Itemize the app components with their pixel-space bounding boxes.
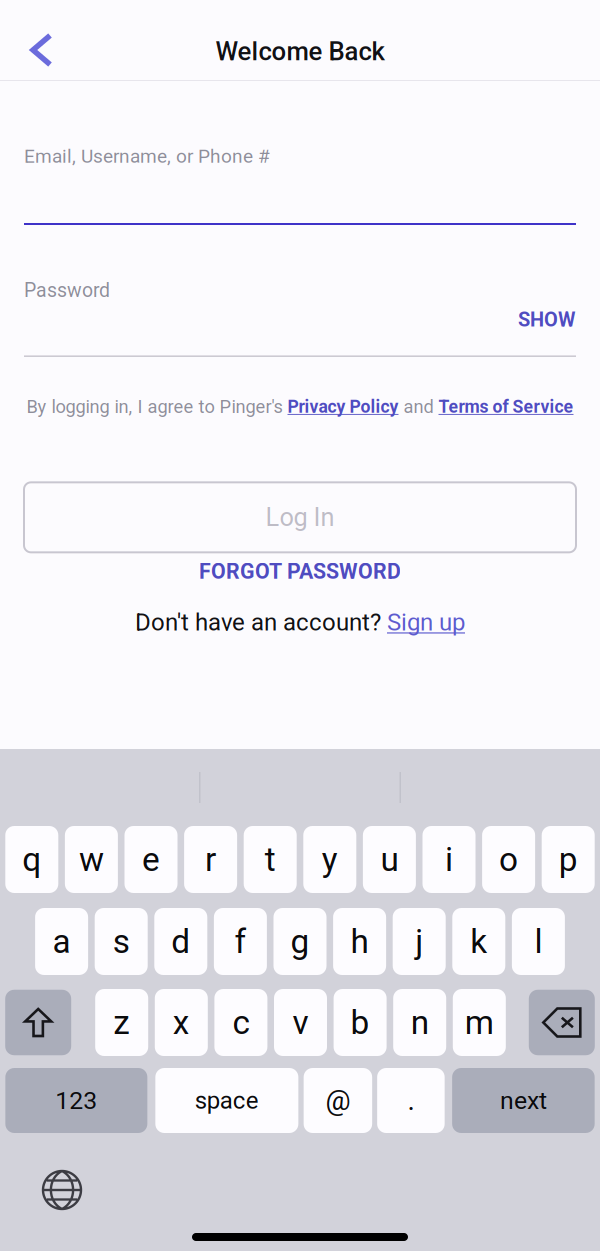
staticText: c bbox=[232, 1003, 249, 1042]
button[interactable]: next bbox=[452, 1068, 595, 1133]
staticText: m bbox=[465, 1003, 494, 1042]
button[interactable]: f bbox=[214, 908, 267, 975]
button[interactable]: l bbox=[512, 908, 565, 975]
staticText: w bbox=[79, 840, 104, 879]
staticText: y bbox=[322, 840, 338, 879]
button[interactable]: Privacy Policy bbox=[287, 396, 398, 417]
staticText: l bbox=[534, 922, 542, 961]
button[interactable]: v bbox=[274, 989, 327, 1056]
button[interactable]: Terms of Service bbox=[438, 396, 573, 417]
staticText: Email, Username, or Phone # bbox=[24, 145, 270, 167]
staticText: Terms of Service bbox=[438, 396, 573, 417]
staticText: SHOW bbox=[518, 308, 576, 331]
button[interactable]: a bbox=[35, 908, 88, 975]
staticText: n bbox=[411, 1003, 429, 1042]
button[interactable]: FORGOT PASSWORD bbox=[24, 560, 576, 582]
staticText: Welcome Back bbox=[215, 36, 384, 67]
staticText: z bbox=[113, 1003, 130, 1042]
button[interactable]: SHOW bbox=[502, 306, 576, 333]
button[interactable]: i bbox=[422, 826, 475, 893]
button[interactable]: e bbox=[124, 826, 177, 893]
staticText: s bbox=[113, 922, 130, 961]
staticText: k bbox=[470, 922, 487, 961]
staticText: o bbox=[499, 840, 518, 879]
button[interactable]: Shift bbox=[5, 990, 71, 1055]
button[interactable]: Sign up bbox=[387, 608, 465, 636]
staticText: j bbox=[415, 922, 423, 961]
staticText: Privacy Policy bbox=[287, 396, 398, 417]
button[interactable]: t bbox=[244, 826, 297, 893]
button[interactable]: q bbox=[5, 826, 58, 893]
button[interactable]: h bbox=[333, 908, 386, 975]
button[interactable]: . bbox=[377, 1068, 445, 1133]
button[interactable]: b bbox=[334, 989, 387, 1056]
button[interactable]: r bbox=[184, 826, 237, 893]
staticText: v bbox=[292, 1003, 308, 1042]
staticText: g bbox=[290, 922, 309, 961]
staticText: . bbox=[407, 1084, 414, 1117]
button[interactable]: c bbox=[214, 989, 267, 1056]
staticText: f bbox=[234, 922, 246, 961]
button[interactable]: y bbox=[303, 826, 356, 893]
button[interactable]: Delete bbox=[529, 990, 595, 1055]
staticText: By logging in, I agree to Pinger's bbox=[26, 396, 287, 417]
button[interactable]: u bbox=[363, 826, 416, 893]
staticText: next bbox=[500, 1086, 547, 1115]
button[interactable]: x bbox=[155, 989, 208, 1056]
staticText: q bbox=[22, 840, 41, 879]
staticText: x bbox=[173, 1003, 190, 1042]
staticText: space bbox=[195, 1086, 259, 1114]
staticText: t bbox=[265, 840, 276, 879]
button[interactable]: m bbox=[453, 989, 506, 1056]
button[interactable]: Log In bbox=[24, 482, 576, 552]
button[interactable]: 123 bbox=[5, 1068, 147, 1133]
staticText: d bbox=[171, 922, 190, 961]
button[interactable]: p bbox=[542, 826, 595, 893]
button[interactable]: g bbox=[273, 908, 326, 975]
staticText: u bbox=[380, 840, 398, 879]
staticText: e bbox=[142, 840, 160, 879]
button[interactable]: @ bbox=[304, 1068, 372, 1133]
staticText: i bbox=[445, 840, 453, 879]
button[interactable]: Back bbox=[0, 20, 76, 82]
staticText: FORGOT PASSWORD bbox=[199, 559, 401, 584]
button[interactable]: k bbox=[452, 908, 505, 975]
button[interactable]: s bbox=[95, 908, 148, 975]
staticText: h bbox=[351, 922, 369, 961]
staticText: Password bbox=[24, 279, 110, 302]
staticText: b bbox=[351, 1003, 370, 1042]
button[interactable]: n bbox=[393, 989, 446, 1056]
button[interactable]: Switch keyboard bbox=[0, 1133, 99, 1221]
button[interactable]: j bbox=[393, 908, 446, 975]
button[interactable]: space bbox=[155, 1068, 298, 1133]
staticText: Don't have an account? bbox=[135, 608, 387, 636]
staticText: Sign up bbox=[387, 608, 465, 636]
staticText: Log In bbox=[265, 502, 334, 532]
button[interactable]: z bbox=[95, 989, 148, 1056]
staticText: r bbox=[205, 840, 216, 879]
button[interactable]: o bbox=[482, 826, 535, 893]
staticText: @ bbox=[325, 1084, 350, 1117]
button[interactable]: d bbox=[154, 908, 207, 975]
staticText: and bbox=[398, 396, 438, 417]
staticText: 123 bbox=[55, 1086, 97, 1115]
staticText: a bbox=[53, 922, 71, 961]
button[interactable]: w bbox=[65, 826, 118, 893]
staticText: p bbox=[559, 840, 578, 879]
